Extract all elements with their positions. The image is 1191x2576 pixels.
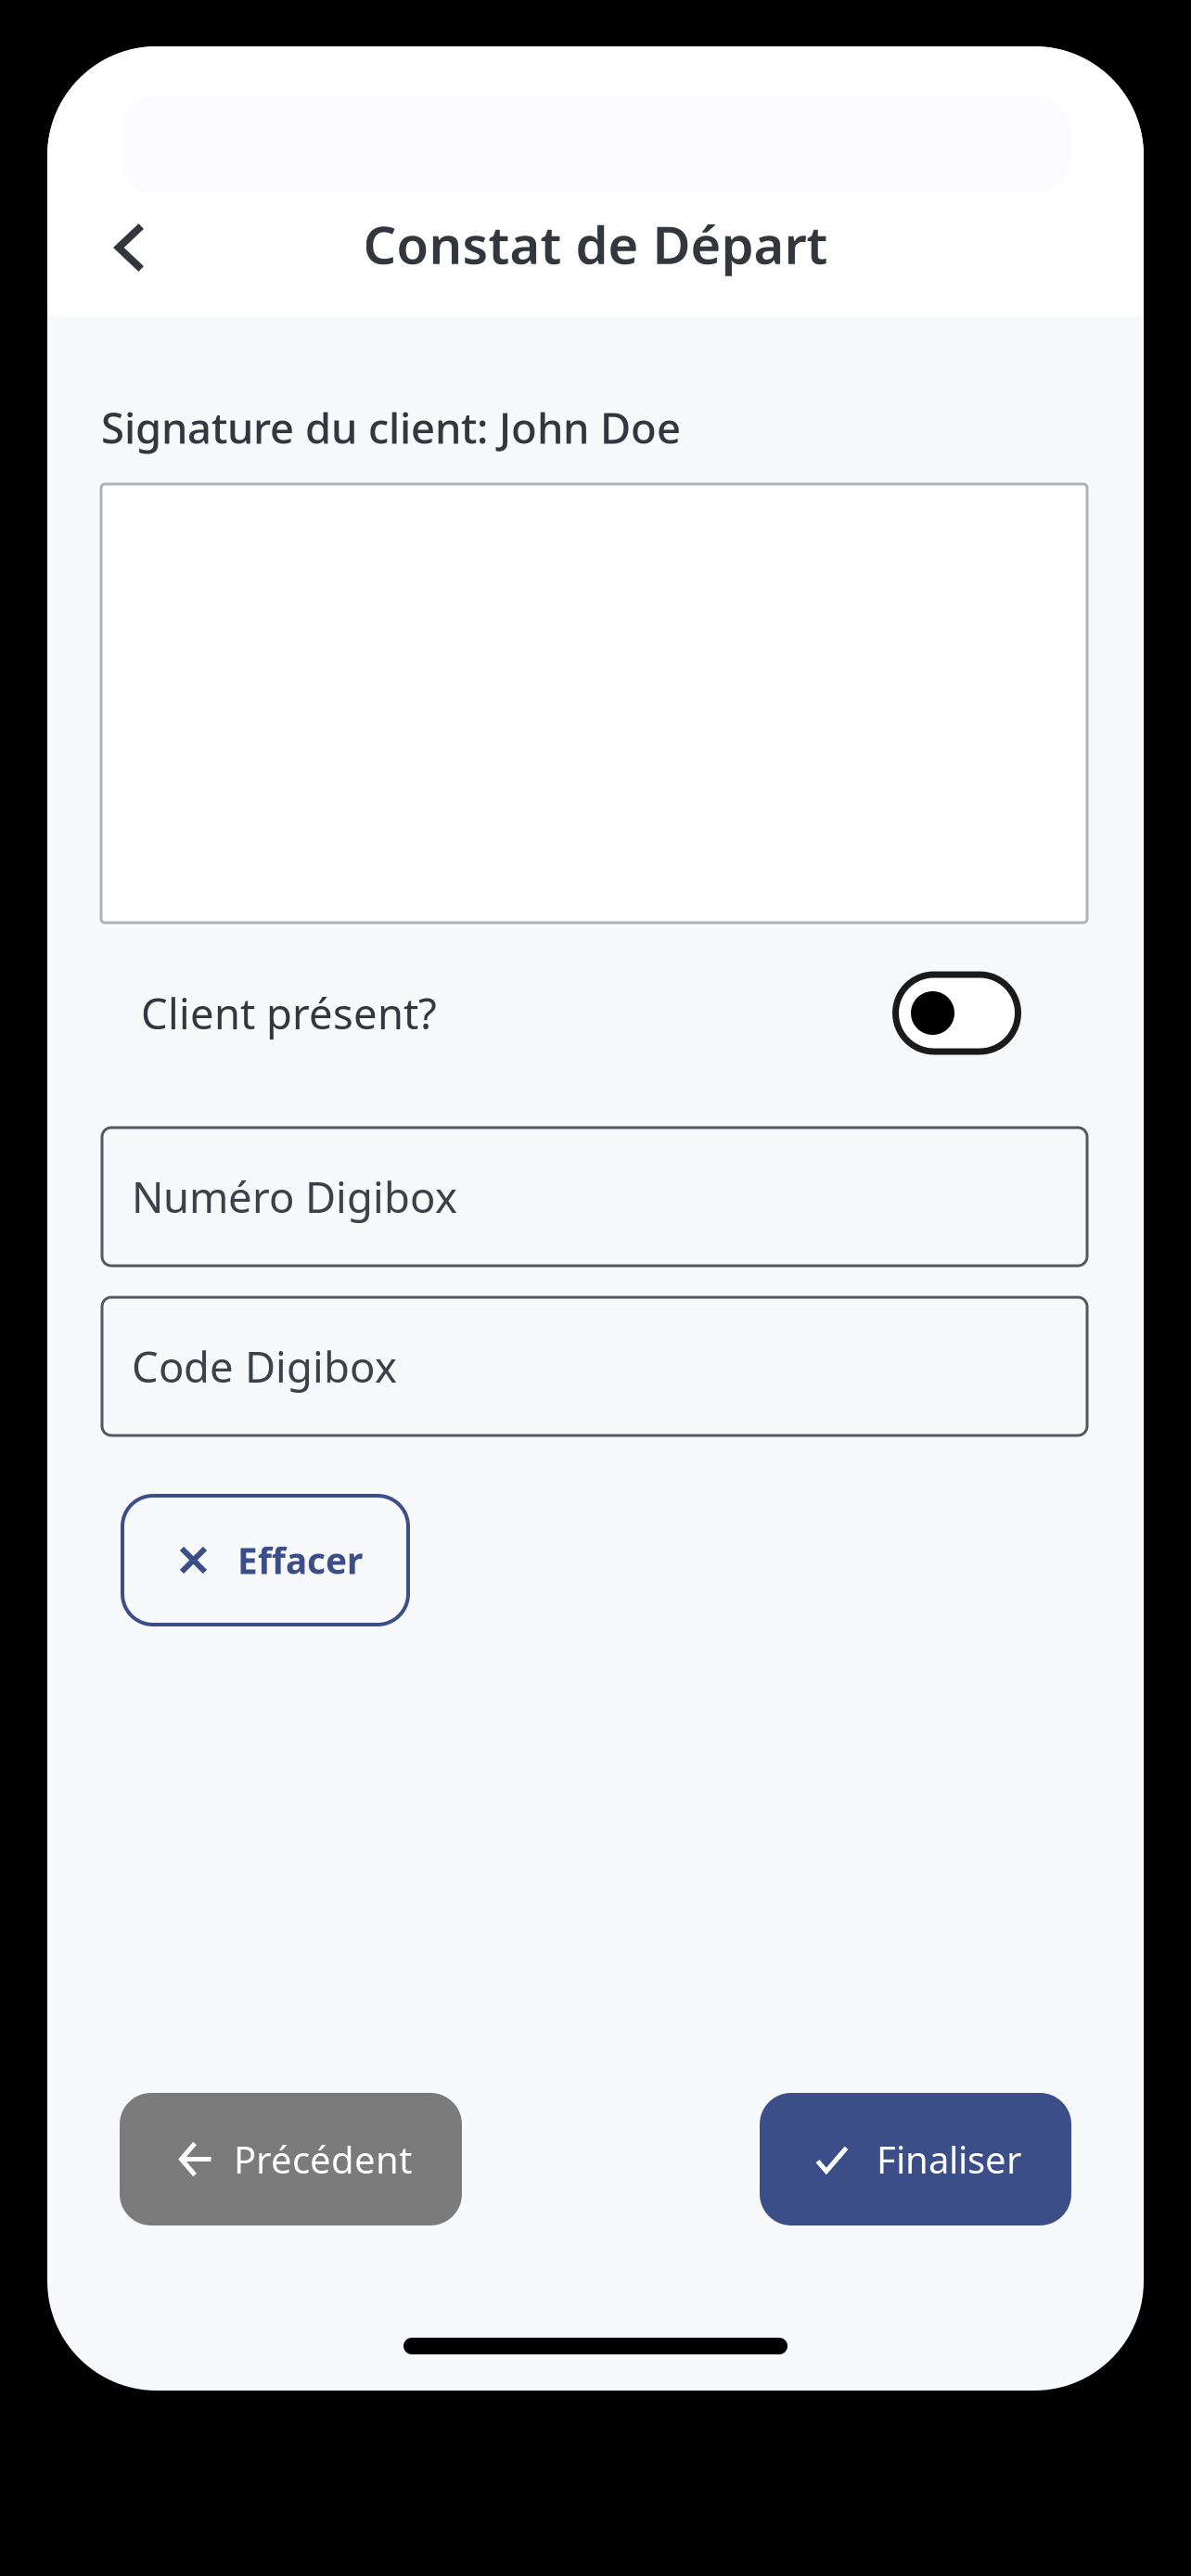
staticText: Finaliser <box>877 2135 1022 2184</box>
button[interactable]: Effacer <box>122 1496 408 1625</box>
staticText: Constat de Départ <box>363 209 828 278</box>
staticText: Code Digibox <box>132 1338 397 1394</box>
button[interactable]: Client présent <box>892 971 1021 1055</box>
button[interactable]: Finaliser <box>760 2093 1071 2225</box>
staticText: Effacer <box>237 1536 363 1584</box>
staticText: Numéro Digibox <box>132 1169 457 1225</box>
button[interactable]: Précédent <box>120 2093 462 2225</box>
button[interactable]: Back <box>79 193 181 295</box>
staticText: Signature du client: John Doe <box>101 400 681 455</box>
staticText: Client présent? <box>141 985 437 1041</box>
staticText: Précédent <box>234 2135 412 2184</box>
